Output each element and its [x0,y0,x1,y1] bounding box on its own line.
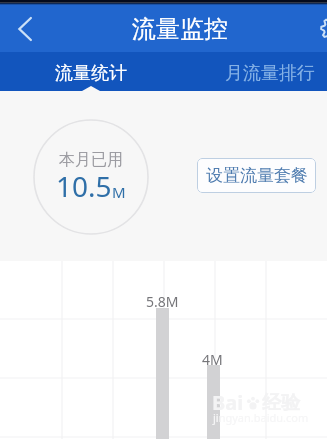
staticText: jingyan.baidu.com [213,410,309,425]
button[interactable]: 流量统计 [0,52,163,91]
staticText: 月流量排行 [225,62,315,85]
staticText: M [112,182,126,202]
button[interactable]: Settings [313,13,327,45]
staticText: Bai [212,389,244,416]
staticText: 5.8M [146,292,179,311]
staticText: 本月已用 [59,150,123,170]
staticText: 设置流量套餐 [206,165,308,186]
button[interactable]: 设置流量套餐 [197,158,316,193]
staticText: 10.5 [56,167,112,205]
staticText: 经验 [262,391,300,415]
staticText: 流量监控 [132,14,228,44]
button[interactable]: 月流量排行 [163,52,327,91]
staticText: 4M [202,350,223,369]
button[interactable]: Back [6,10,44,48]
staticText: 流量统计 [55,62,127,85]
